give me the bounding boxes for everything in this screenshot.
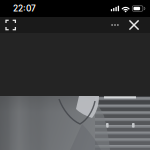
button[interactable]: More options bbox=[106, 17, 124, 33]
staticText: 22:07 bbox=[13, 3, 36, 13]
button[interactable]: Enter full screen bbox=[0, 17, 30, 33]
button[interactable]: Close bbox=[124, 17, 144, 33]
